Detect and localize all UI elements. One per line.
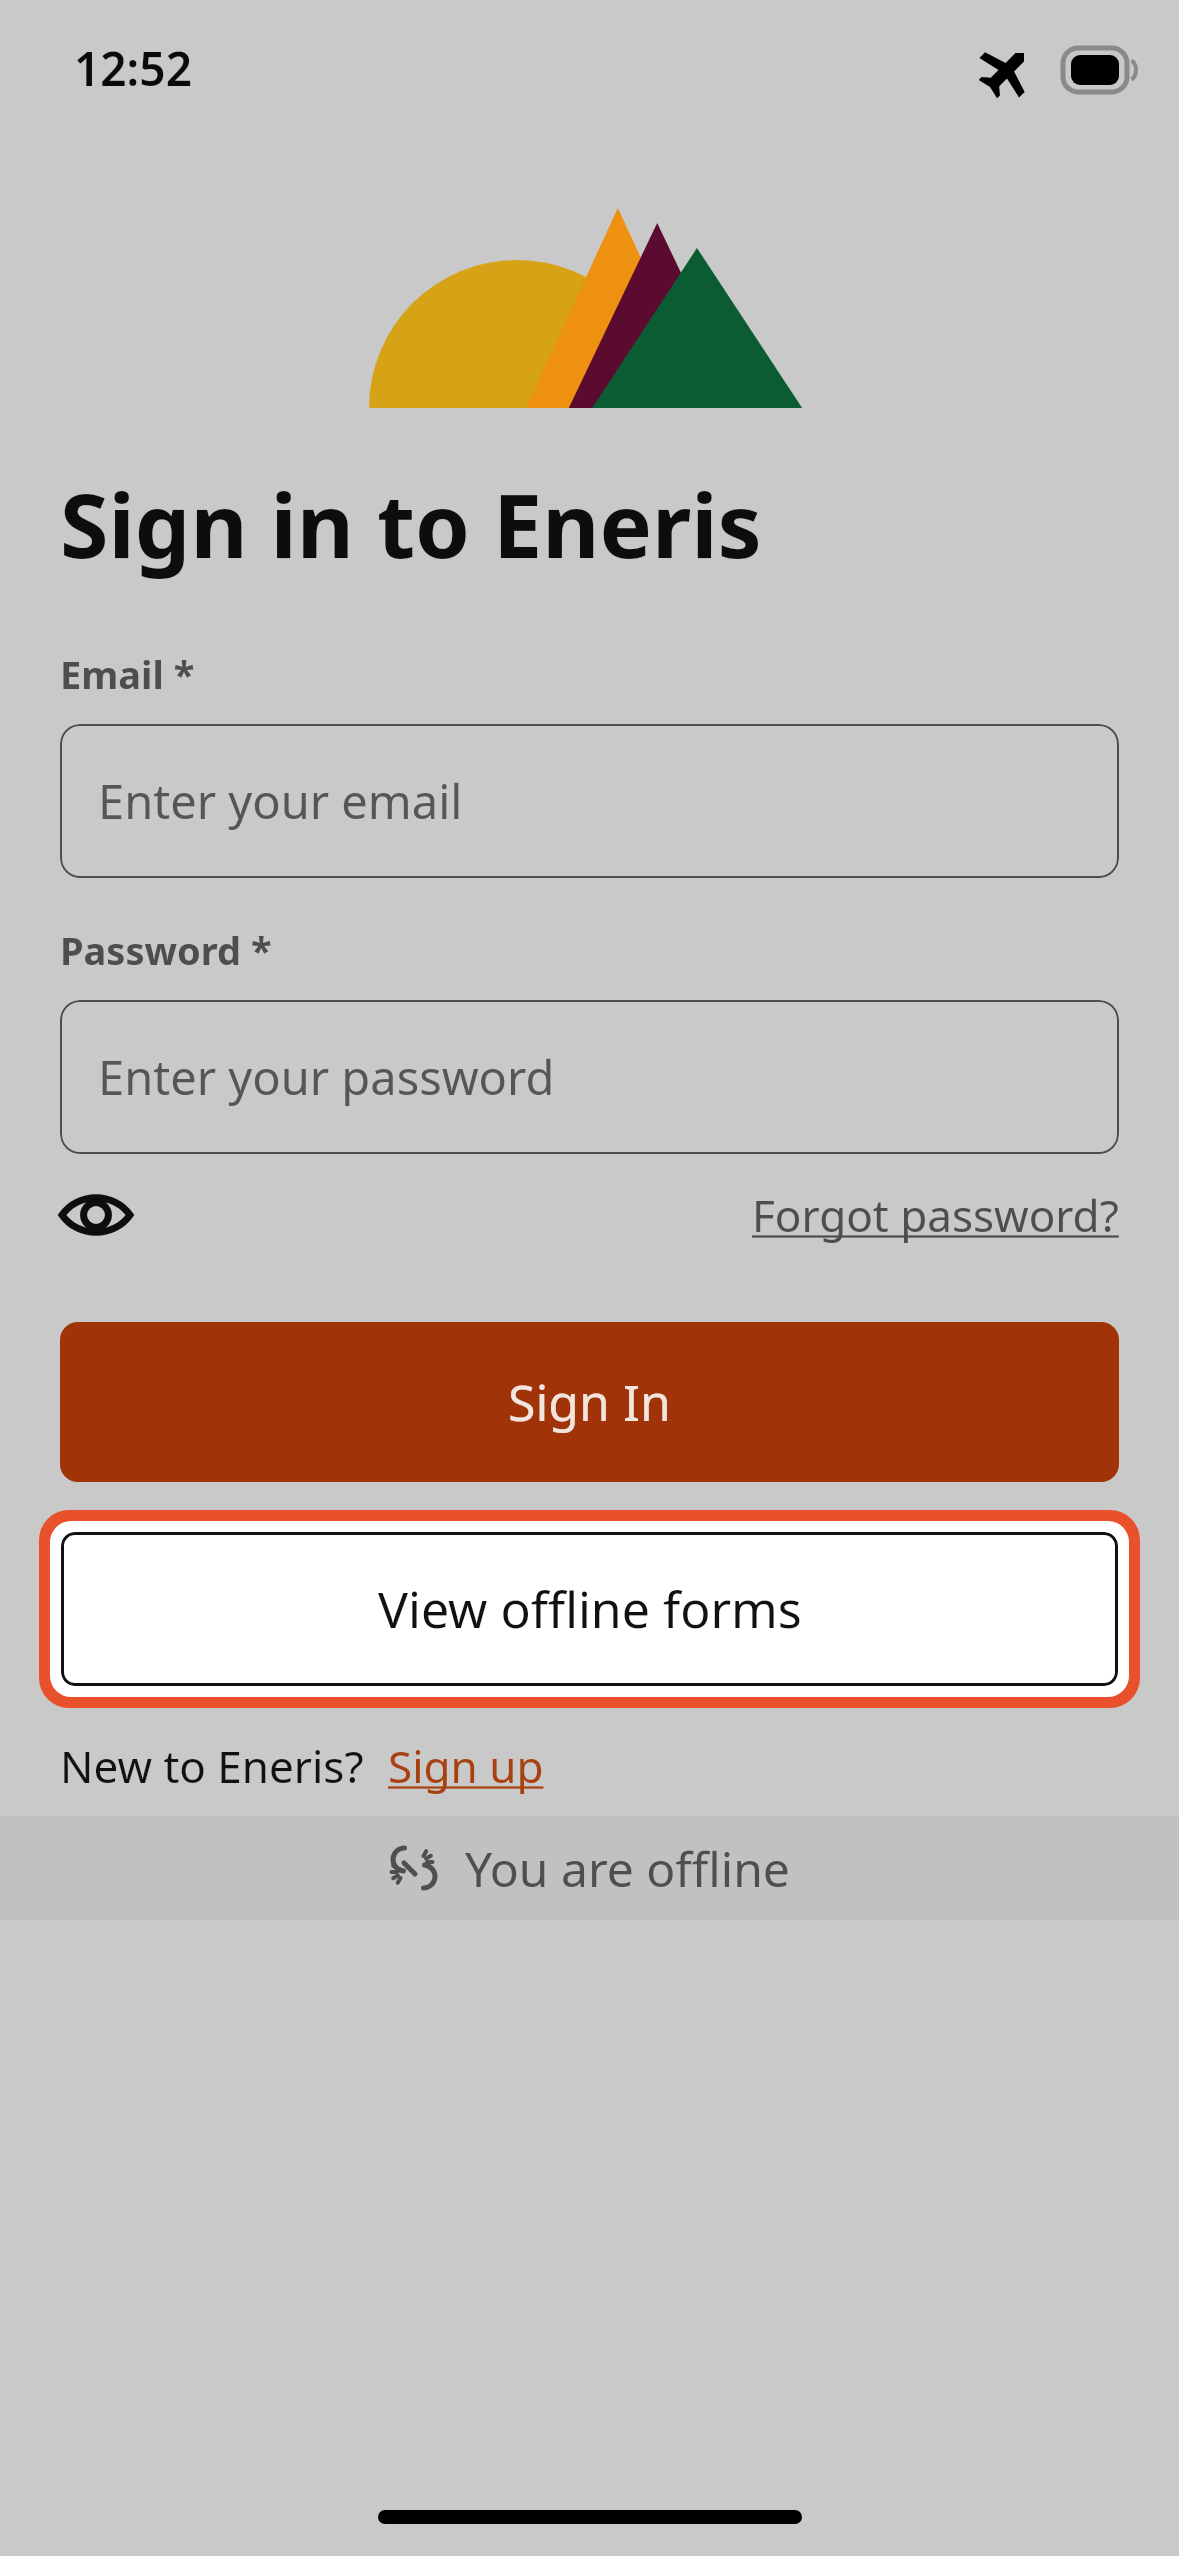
button[interactable]: Sign up	[388, 1736, 544, 1796]
button[interactable]: Sign In	[60, 1322, 1119, 1482]
staticText: Email *	[60, 648, 195, 700]
staticText: Enter your password	[98, 1045, 555, 1109]
staticText: New to Eneris?	[60, 1736, 364, 1796]
staticText: View offline forms	[378, 1575, 802, 1643]
button[interactable]: View offline forms	[61, 1532, 1118, 1686]
staticText: Password *	[60, 924, 272, 976]
staticText: 12:52	[74, 37, 192, 100]
staticText: Sign In	[508, 1368, 671, 1436]
staticText: Sign in to Eneris	[60, 464, 762, 584]
staticText: Enter your email	[98, 769, 463, 833]
button[interactable]: Enter your password	[60, 1000, 1119, 1154]
button[interactable]: Forgot password?	[752, 1185, 1119, 1245]
staticText: Forgot password?	[752, 1185, 1119, 1245]
button[interactable]: Enter your email	[60, 724, 1119, 878]
staticText: You are offline	[465, 1836, 790, 1901]
button[interactable]: Show password	[60, 1180, 148, 1250]
staticText: Sign up	[388, 1736, 544, 1796]
